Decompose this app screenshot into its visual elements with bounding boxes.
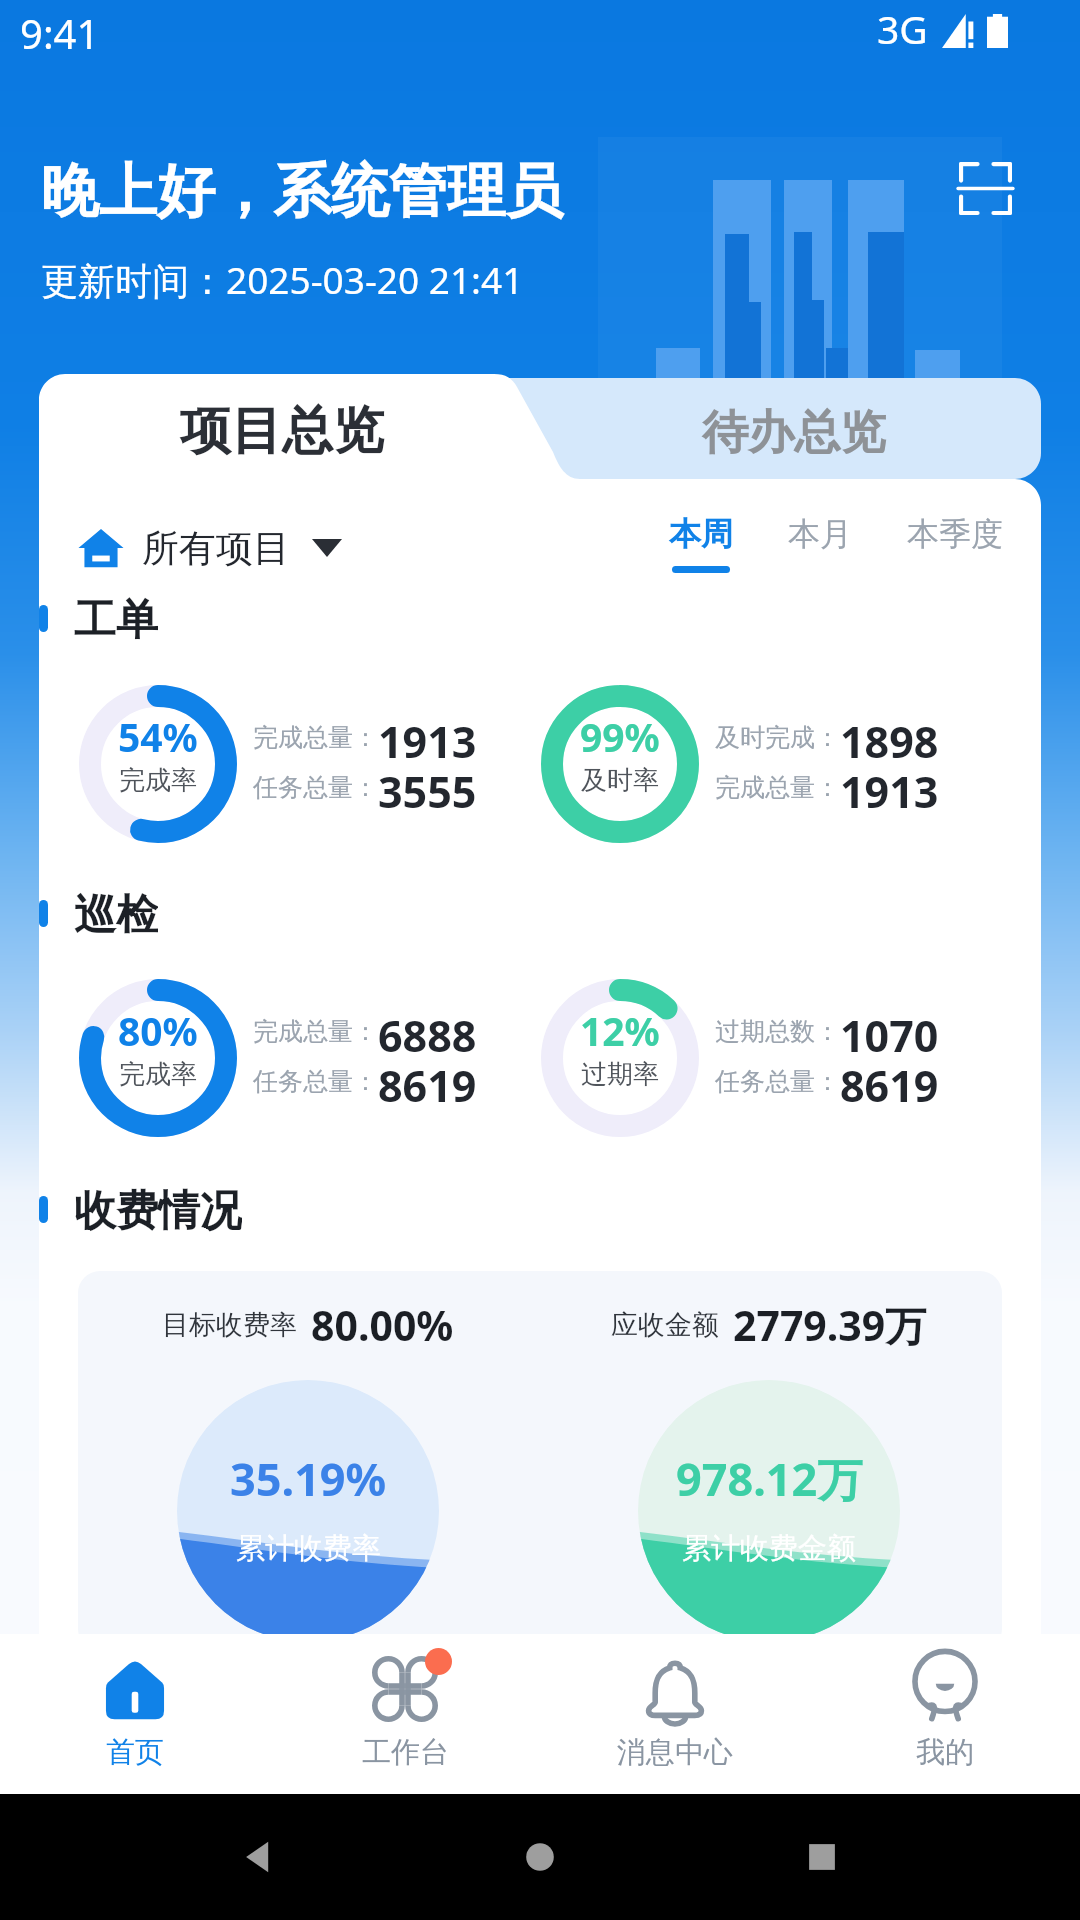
staticText: 收费情况 — [74, 1185, 242, 1233]
staticText: 所有项目 — [142, 525, 290, 572]
staticText: 首页 — [106, 1734, 164, 1771]
staticText: 工单 — [74, 594, 158, 642]
staticText: 目标收费率 — [162, 1308, 297, 1342]
staticText: 完成总量： — [253, 722, 378, 753]
staticText: 过期率 — [581, 1058, 659, 1091]
button[interactable]: 工作台 — [270, 1634, 540, 1794]
staticText: 9:41 — [20, 6, 100, 60]
staticText: 8619 — [840, 1056, 939, 1106]
staticText: 完成率 — [119, 764, 197, 797]
staticText: 完成总量： — [253, 1016, 378, 1047]
staticText: 任务总量： — [253, 1066, 378, 1097]
staticText: 1913 — [840, 762, 939, 812]
staticText: 晚上好，系统管理员 — [41, 155, 563, 228]
button[interactable]: 待办总览 — [559, 388, 1029, 478]
staticText: 更新时间：2025-03-20 21:41 — [41, 254, 524, 305]
staticText: 978.12万 — [676, 1448, 863, 1509]
staticText: 工作台 — [362, 1734, 449, 1771]
staticText: 巡检 — [74, 889, 158, 937]
staticText: 99% — [580, 710, 660, 763]
staticText: 2779.39万 — [733, 1297, 927, 1353]
staticText: 及时完成： — [715, 722, 840, 753]
staticText: 过期总数： — [715, 1016, 840, 1047]
staticText: 累计收费金额 — [682, 1530, 856, 1567]
button[interactable]: 首页 — [0, 1634, 270, 1794]
staticText: 我的 — [916, 1734, 974, 1771]
button[interactable]: 本月 — [740, 514, 900, 573]
staticText: 本周 — [669, 514, 733, 554]
staticText: 应收金额 — [611, 1308, 719, 1342]
staticText: 80.00% — [311, 1297, 454, 1353]
staticText: 本月 — [788, 514, 852, 554]
button[interactable]: 本季度 — [875, 514, 1035, 573]
staticText: 6888 — [378, 1006, 477, 1056]
staticText: 消息中心 — [617, 1734, 733, 1771]
staticText: 8619 — [378, 1056, 477, 1106]
staticText: 待办总览 — [702, 404, 886, 462]
staticText: 及时率 — [581, 764, 659, 797]
staticText: 项目总览 — [180, 399, 384, 463]
button[interactable]: 项目总览 — [47, 386, 517, 476]
staticText: 任务总量： — [715, 1066, 840, 1097]
staticText: 35.19% — [230, 1448, 387, 1509]
button[interactable]: 本周 — [621, 514, 781, 573]
button[interactable]: 我的 — [810, 1634, 1080, 1794]
button[interactable]: 所有项目 — [78, 518, 342, 578]
staticText: 12% — [580, 1004, 660, 1057]
staticText: 累计收费率 — [236, 1530, 381, 1567]
staticText: 3555 — [378, 762, 477, 812]
staticText: 完成总量： — [715, 772, 840, 803]
staticText: 1898 — [840, 712, 939, 762]
staticText: 1070 — [840, 1006, 939, 1056]
staticText: 1913 — [378, 712, 477, 762]
staticText: 54% — [118, 710, 198, 763]
staticText: 完成率 — [119, 1058, 197, 1091]
staticText: 3G — [877, 2, 928, 55]
button[interactable]: 扫一扫 — [940, 143, 1030, 233]
staticText: 本季度 — [907, 514, 1003, 554]
staticText: 80% — [118, 1004, 198, 1057]
staticText: 任务总量： — [253, 772, 378, 803]
button[interactable]: 消息中心 — [540, 1634, 810, 1794]
